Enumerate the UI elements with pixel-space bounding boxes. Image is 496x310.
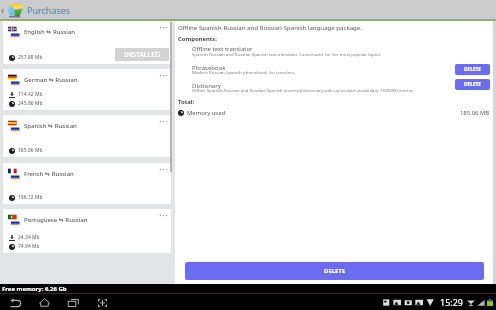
- button[interactable]: German ⇆ Russian: [3, 69, 171, 110]
- staticText: 257.88 Mb: [18, 54, 43, 61]
- button[interactable]: INSTALLED: [115, 48, 169, 61]
- staticText: 15:29: [440, 296, 464, 308]
- staticText: Memory used: [187, 109, 226, 117]
- staticText: 74.94 Mb: [18, 243, 40, 250]
- button[interactable]: Home: [37, 295, 52, 310]
- staticText: DELETE: [324, 267, 346, 275]
- staticText: Spanish ⇆ Russian: [24, 122, 77, 130]
- staticText: Components:: [178, 35, 217, 43]
- staticText: DELETE: [464, 81, 482, 88]
- staticText: Purchases: [27, 4, 71, 16]
- staticText: Portuguese ⇆ Russian: [24, 216, 88, 224]
- button[interactable]: More options: [158, 211, 169, 220]
- button[interactable]: More options: [158, 165, 169, 174]
- staticText: INSTALLED: [124, 50, 161, 60]
- staticText: German ⇆ Russian: [24, 76, 78, 84]
- button[interactable]: Screenshot: [95, 295, 110, 310]
- staticText: 24.34 Mb: [18, 234, 40, 241]
- button[interactable]: Back: [8, 295, 23, 310]
- staticText: 196.12 Mb: [18, 194, 43, 201]
- button[interactable]: More options: [158, 23, 169, 32]
- staticText: Offline text translator: [192, 45, 253, 53]
- staticText: Total:: [178, 98, 195, 106]
- button[interactable]: Recents: [66, 295, 81, 310]
- staticText: Free memory: 6.26 Gb: [2, 285, 67, 293]
- button[interactable]: DELETE: [185, 262, 484, 280]
- staticText: Offline Spanish-Russian and Russian-Span…: [192, 87, 415, 93]
- staticText: 185.06 MB: [460, 109, 490, 117]
- staticText: 114.42 Mb: [18, 91, 43, 98]
- button[interactable]: More options: [158, 117, 169, 126]
- button[interactable]: English ⇆ Russian: [3, 21, 171, 64]
- button[interactable]: DELETE: [455, 64, 490, 75]
- staticText: Offline Spanish-Russian and Russian-Span…: [178, 23, 362, 31]
- staticText: Dictionary: [192, 82, 221, 90]
- staticText: DELETE: [464, 66, 482, 73]
- staticText: ‹: [1, 3, 5, 17]
- staticText: Phrasebook: [192, 64, 226, 72]
- button[interactable]: Spanish ⇆ Russian: [3, 115, 171, 157]
- button[interactable]: Portuguese ⇆ Russian: [3, 209, 171, 253]
- button[interactable]: French ⇆ Russian: [3, 163, 171, 204]
- staticText: 185.06 Mb: [18, 147, 43, 154]
- staticText: Spanish-Russian and Russian-Spanish text…: [192, 51, 382, 57]
- staticText: French ⇆ Russian: [24, 170, 74, 178]
- staticText: 245.86 Mb: [18, 100, 43, 107]
- button[interactable]: DELETE: [455, 79, 490, 90]
- staticText: Modern Russian-Spanish phrasebook for tr…: [192, 69, 296, 75]
- button[interactable]: More options: [158, 71, 169, 80]
- staticText: English ⇆ Russian: [24, 28, 76, 36]
